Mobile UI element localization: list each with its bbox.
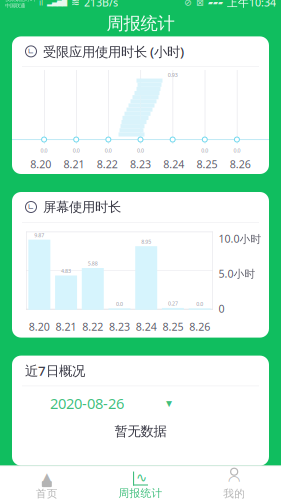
staticText: 10.0小时 [218, 232, 261, 246]
staticText: 8.24 [136, 319, 157, 334]
staticText: 中国联通 [5, 2, 25, 9]
staticText: ıl [39, 0, 43, 8]
staticText: 0.27 [168, 300, 178, 307]
button[interactable]: 2020-08-26 [12, 386, 269, 420]
staticText: 8.21 [63, 157, 84, 171]
staticText: 0.93 [168, 71, 178, 79]
staticText: 8.23 [130, 157, 151, 171]
staticText: 0.0 [196, 300, 203, 307]
staticText: 5.88 [88, 260, 98, 267]
staticText: 0.0 [116, 300, 123, 307]
staticText: 8.22 [82, 319, 103, 334]
staticText: 9.87 [34, 231, 44, 239]
staticText: 4.83 [61, 267, 71, 274]
staticText: 受限应用使用时长 (小时) [43, 42, 184, 60]
button[interactable]: ◠ [187, 466, 281, 500]
staticText: 上午10:34 [227, 0, 276, 9]
staticText: 暂无数据 [114, 423, 166, 439]
staticText: ▂▄▆█ [47, 0, 67, 6]
staticText: 5.0小时 [218, 266, 255, 281]
staticText: ∿ [136, 470, 147, 485]
button[interactable]: ▲ [0, 466, 94, 500]
staticText: ∟ [27, 47, 34, 56]
staticText: 8.22 [97, 157, 118, 171]
staticText: 0.0 [41, 147, 48, 154]
staticText: 近7日概况 [25, 362, 85, 379]
staticText: 8.25 [197, 157, 218, 171]
staticText: 0.0 [105, 147, 112, 154]
staticText: 0.0 [137, 147, 144, 154]
staticText: 8.20 [29, 319, 50, 334]
button[interactable]: ∿ [94, 466, 187, 500]
staticText: 213B/s [84, 0, 118, 9]
staticText: 仅限紧急呼叫 [5, 0, 35, 2]
staticText: 0.0 [233, 147, 240, 154]
staticText: 周报统计 [106, 13, 174, 34]
staticText: ◠ [228, 472, 241, 489]
staticText: 8.23 [109, 319, 130, 334]
staticText: ▾ [166, 396, 172, 410]
staticText: 周报统计 [118, 486, 162, 500]
staticText: 0.0 [201, 147, 208, 154]
staticText: 屏幕使用时长 [43, 199, 121, 215]
staticText: ≋ [71, 0, 80, 8]
staticText: 8.20 [30, 157, 51, 171]
staticText: 8.24 [163, 157, 184, 171]
staticText: ∟ [27, 202, 34, 212]
staticText [140, 71, 141, 79]
staticText: 我的 [223, 487, 245, 500]
staticText: ▲ [42, 470, 51, 484]
staticText: ⊠ [196, 0, 204, 8]
staticText: 0.0 [73, 147, 80, 154]
staticText: ▰▰▰ [208, 0, 223, 6]
staticText: 首页 [36, 487, 58, 500]
staticText: 8.26 [189, 319, 210, 334]
staticText: 2020-08-26 [50, 393, 124, 413]
staticText: ⊘ [184, 0, 192, 8]
staticText: 8.26 [230, 157, 251, 171]
staticText: 8.25 [162, 319, 183, 334]
staticText: 0 [218, 301, 224, 316]
staticText: 8.21 [56, 319, 77, 334]
staticText: 8.95 [141, 238, 151, 245]
